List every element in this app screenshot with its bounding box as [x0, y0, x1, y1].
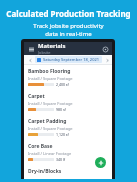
staticText: Install / Square Footage: [28, 126, 73, 131]
button[interactable]: Menu: [27, 45, 35, 53]
button[interactable]: Settings: [101, 45, 109, 53]
staticText: Materials: [38, 42, 66, 50]
staticText: 1,120 sf: [56, 132, 69, 137]
staticText: Track jobsite productivity data in real-…: [33, 22, 104, 38]
staticText: Carpet: [28, 93, 45, 100]
button[interactable]: Bamboo Flooring: [24, 65, 112, 90]
staticText: Calculated Production Tracking: [6, 8, 131, 19]
staticText: 340 lf: [56, 157, 66, 162]
button[interactable]: Next day: [104, 57, 110, 63]
button[interactable]: Core Base: [24, 140, 112, 165]
button[interactable]: Previous day: [27, 57, 33, 63]
staticText: Core Base: [28, 143, 53, 150]
staticText: 2,400 sf: [56, 82, 69, 87]
button[interactable]: Carpet Padding: [24, 115, 112, 140]
staticText: Install / Square Footage: [28, 101, 73, 106]
staticText: Install / Square Footage: [28, 76, 73, 81]
button[interactable]: Select date: [24, 55, 112, 64]
staticText: 980 sf: [56, 107, 66, 112]
staticText: Dry-in/Blocks: [28, 168, 62, 175]
staticText: Saturday September 18, 2021: [43, 57, 100, 62]
staticText: Install / Linear Footage: [28, 151, 72, 156]
button[interactable]: Carpet: [24, 90, 112, 115]
button[interactable]: Add: [95, 157, 106, 168]
staticText: Carpet Padding: [28, 118, 67, 125]
staticText: Jobsite: [38, 50, 51, 55]
button[interactable]: Dry-in/Blocks: [24, 165, 112, 179]
staticText: Bamboo Flooring: [28, 68, 71, 75]
